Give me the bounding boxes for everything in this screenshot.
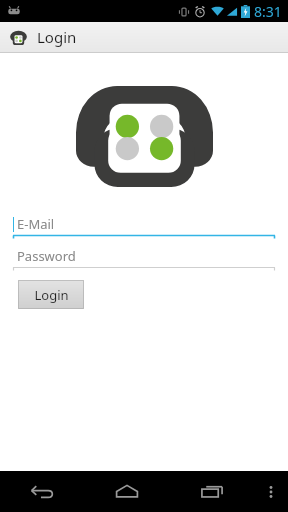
- button[interactable]: Login: [18, 280, 84, 309]
- button[interactable]: More options: [254, 471, 288, 512]
- button[interactable]: Recent apps: [169, 471, 254, 512]
- staticText: Login: [37, 27, 77, 47]
- staticText: Password: [17, 247, 76, 265]
- staticText: Login: [34, 286, 69, 304]
- staticText: 8:31: [254, 2, 282, 21]
- button[interactable]: Password: [13, 245, 275, 271]
- button[interactable]: Home: [84, 471, 169, 512]
- button[interactable]: Back: [0, 471, 84, 512]
- button[interactable]: E-Mail: [13, 213, 275, 239]
- staticText: E-Mail: [17, 215, 55, 233]
- button[interactable]: App icon: [9, 28, 28, 47]
